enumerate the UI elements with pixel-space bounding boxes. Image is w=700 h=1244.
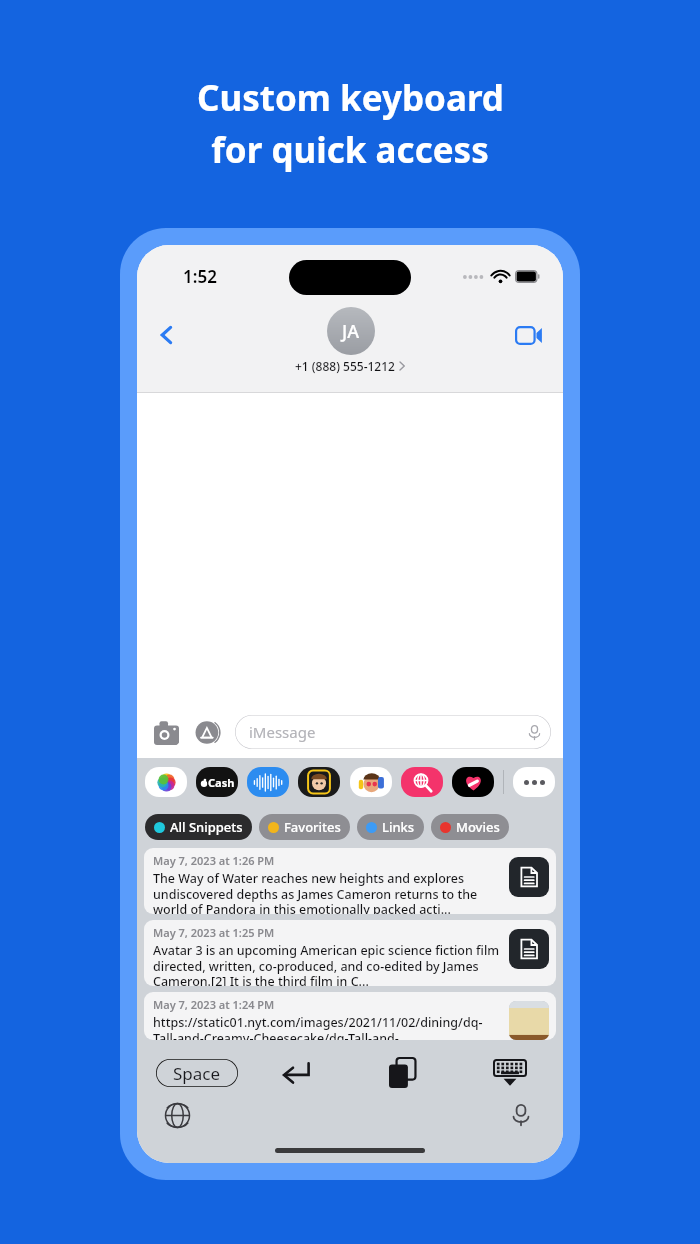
- staticText: Custom keyboard: [197, 74, 504, 122]
- button[interactable]: May 7, 2023 at 1:24 PM: [144, 992, 556, 1040]
- button[interactable]: FaceTime video call: [509, 315, 549, 355]
- button[interactable]: Hide keyboard: [456, 1050, 563, 1096]
- staticText: May 7, 2023 at 1:26 PM: [153, 853, 275, 868]
- button[interactable]: iMessage app: [196, 767, 238, 797]
- staticText: JA: [342, 319, 360, 344]
- button[interactable]: iMessage app: [247, 767, 289, 797]
- button[interactable]: Links: [357, 814, 424, 840]
- button[interactable]: iMessage: [235, 715, 551, 749]
- button[interactable]: App Store: [191, 715, 225, 749]
- button[interactable]: JA: [327, 307, 375, 355]
- button[interactable]: iMessage app: [401, 767, 443, 797]
- button[interactable]: Camera: [149, 715, 183, 749]
- button[interactable]: iMessage app: [145, 767, 187, 797]
- staticText: 1:52: [183, 265, 217, 288]
- button[interactable]: Change keyboard: [159, 1097, 195, 1133]
- staticText: May 7, 2023 at 1:24 PM: [153, 997, 275, 1012]
- button[interactable]: May 7, 2023 at 1:26 PM: [144, 848, 556, 914]
- button[interactable]: All Snippets: [145, 814, 252, 840]
- button[interactable]: Dictate: [503, 1097, 539, 1133]
- button[interactable]: iMessage app: [513, 767, 555, 797]
- button[interactable]: Space: [156, 1059, 238, 1087]
- button[interactable]: Movies: [431, 814, 509, 840]
- staticText: The Way of Water reaches new heights and…: [153, 870, 501, 914]
- button[interactable]: May 7, 2023 at 1:25 PM: [144, 920, 556, 986]
- button[interactable]: Return: [243, 1050, 349, 1096]
- staticText: Space: [173, 1062, 221, 1085]
- staticText: All Snippets: [170, 818, 243, 836]
- staticText: Movies: [456, 818, 500, 836]
- button[interactable]: iMessage app: [298, 767, 340, 797]
- staticText: for quick access: [211, 126, 489, 174]
- staticText: iMessage: [249, 722, 316, 742]
- staticText: Links: [382, 818, 415, 836]
- button[interactable]: iMessage app: [452, 767, 494, 797]
- staticText: https://static01.nyt.com/images/2021/11/…: [153, 1014, 501, 1040]
- staticText: Avatar 3 is an upcoming American epic sc…: [153, 942, 501, 986]
- staticText: +1 (888) 555-1212: [295, 358, 395, 374]
- staticText: May 7, 2023 at 1:25 PM: [153, 925, 275, 940]
- staticText: Favorites: [284, 818, 341, 836]
- button[interactable]: Back: [149, 317, 185, 353]
- staticText: Cash: [208, 775, 235, 790]
- button[interactable]: Copy: [349, 1050, 456, 1096]
- button[interactable]: iMessage app: [350, 767, 392, 797]
- button[interactable]: Favorites: [259, 814, 350, 840]
